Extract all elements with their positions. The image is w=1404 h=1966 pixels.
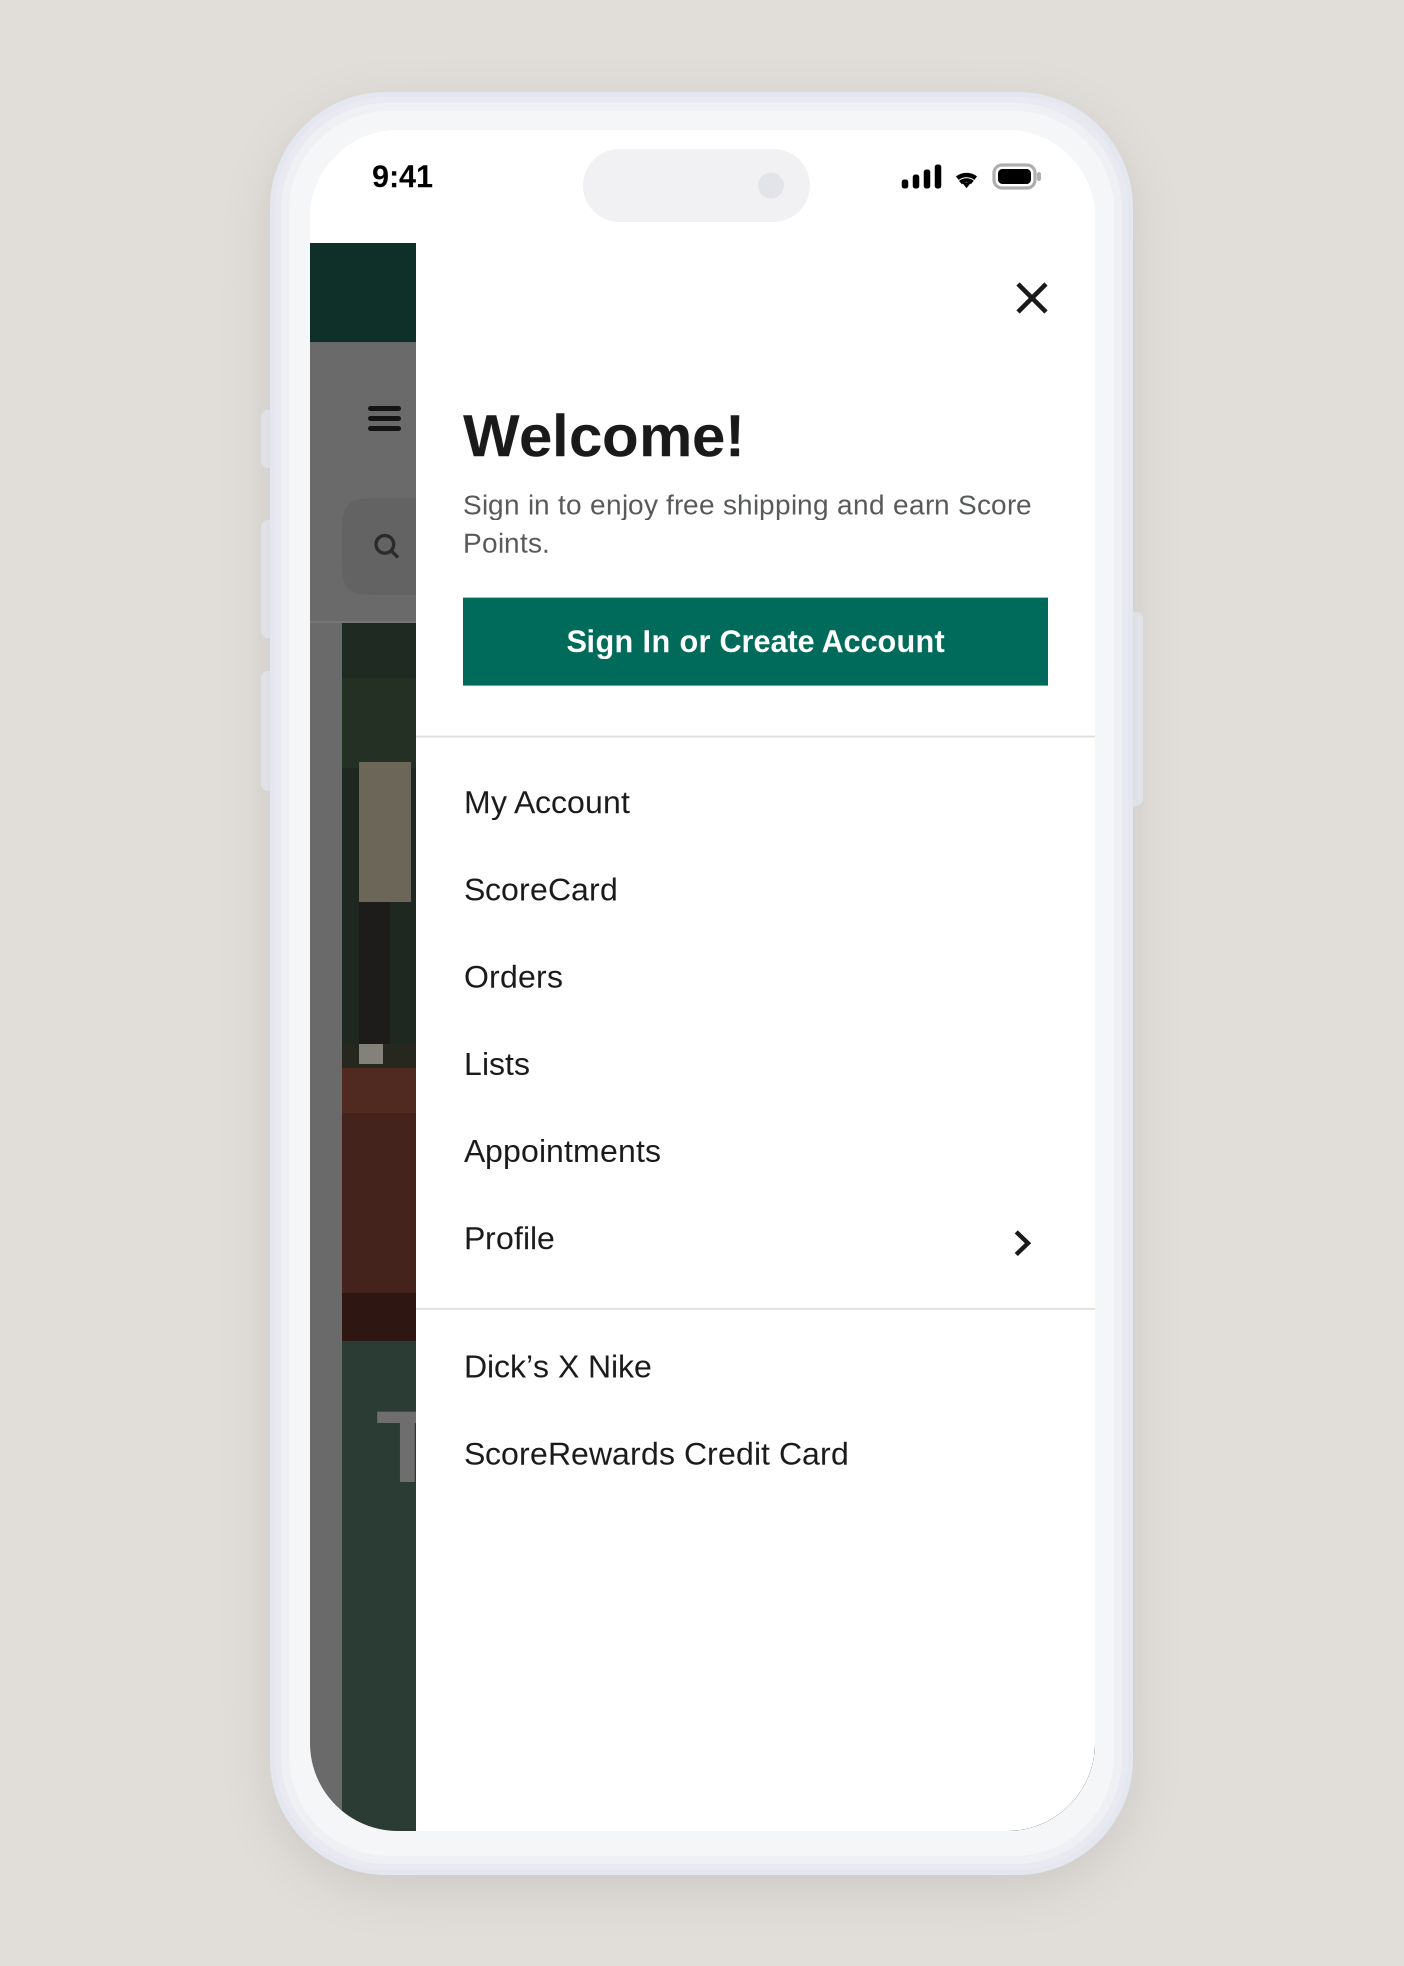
button[interactable]: Close: [992, 258, 1072, 338]
staticText: Appointments: [464, 1133, 661, 1169]
staticText: Sign in to enjoy free shipping and earn …: [463, 489, 1032, 559]
staticText: Dick’s X Nike: [464, 1348, 652, 1384]
button[interactable]: Dick’s X Nike: [416, 1323, 1095, 1410]
staticText: Lists: [464, 1046, 530, 1082]
button[interactable]: ScoreRewards Credit Card: [416, 1410, 1095, 1497]
staticText: Sign In or Create Account: [566, 624, 944, 659]
staticText: 9:41: [372, 159, 433, 194]
button[interactable]: Menu: [310, 342, 401, 431]
button[interactable]: ScoreCard: [416, 846, 1095, 933]
staticText: Orders: [464, 959, 563, 994]
staticText: Profile: [464, 1220, 555, 1256]
button[interactable]: My Account: [416, 759, 1095, 846]
staticText: ScoreRewards Credit Card: [464, 1436, 849, 1471]
button[interactable]: Lists: [416, 1020, 1095, 1107]
staticText: What can we help you find?: [416, 531, 766, 562]
button[interactable]: What can we help you find?: [310, 498, 1095, 595]
staticText: ScoreCard: [464, 871, 618, 907]
button[interactable]: Profile: [416, 1195, 1095, 1282]
staticText: Welcome!: [463, 402, 745, 469]
staticText: THE GIFT: [376, 1389, 845, 1504]
staticText: My Account: [464, 784, 630, 820]
button[interactable]: Orders: [416, 933, 1095, 1020]
button[interactable]: Appointments: [416, 1107, 1095, 1195]
button[interactable]: Sign In or Create Account: [463, 598, 1048, 686]
